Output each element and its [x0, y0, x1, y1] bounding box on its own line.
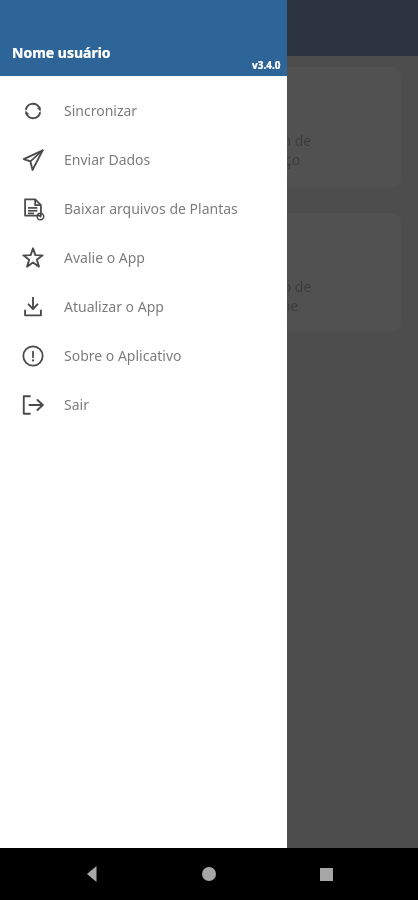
button[interactable]: Recent apps [302, 850, 350, 898]
button[interactable]: Back [69, 850, 117, 898]
button[interactable]: Sincronizar [0, 86, 287, 135]
button[interactable]: Baixar arquivos de Plantas [0, 184, 287, 233]
staticText: Gestão de [245, 277, 312, 296]
staticText: Sincronizar [64, 101, 138, 120]
staticText: Nome usuário [12, 43, 111, 62]
staticText: Baixar arquivos de Plantas [64, 199, 238, 218]
button[interactable]: Sobre o Aplicativo [0, 331, 287, 380]
button[interactable]: Atualizar o App [0, 282, 287, 331]
button[interactable]: Sair [0, 380, 287, 429]
button[interactable]: Ordem de [225, 67, 401, 188]
staticText: Equipe [253, 296, 299, 315]
staticText: Avalie o App [64, 248, 145, 267]
staticText: Ordem de [245, 131, 312, 150]
button[interactable]: Gestão de [225, 213, 401, 332]
staticText: v3.4.0 [252, 58, 281, 72]
staticText: Atualizar o App [64, 297, 164, 316]
staticText: Sobre o Aplicativo [64, 346, 182, 365]
staticText: Enviar Dados [64, 150, 151, 169]
staticText: Serviço [253, 150, 301, 169]
button[interactable]: Home [185, 850, 233, 898]
staticText: Sair [64, 395, 89, 414]
button[interactable]: Enviar Dados [0, 135, 287, 184]
button[interactable]: Avalie o App [0, 233, 287, 282]
